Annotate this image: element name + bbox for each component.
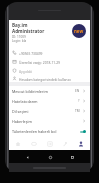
button[interactable]: Home xyxy=(11,137,25,150)
button[interactable]: Dil seçimi xyxy=(9,106,90,116)
staticText: Tüketenlerden haberli bol xyxy=(12,129,80,134)
staticText: Haberleşim xyxy=(12,119,82,124)
staticText: Login: bla xyxy=(12,39,27,43)
button[interactable]: Tüketenlerden haberli bol xyxy=(9,126,90,136)
button[interactable]: Messages xyxy=(27,137,41,150)
button[interactable]: Hatırlatıcılarım xyxy=(9,96,90,106)
staticText: Hatırlatıcılarım xyxy=(12,99,78,104)
button[interactable]: Add xyxy=(43,137,57,150)
staticText: Dil seçimi xyxy=(12,109,75,114)
staticText: new xyxy=(74,28,84,34)
staticText: ? xyxy=(78,99,80,103)
staticText: ID: 11009 xyxy=(12,35,26,39)
staticText: Üzerelisi vaqiy: 2018-11-29 xyxy=(19,60,60,64)
staticText: +90565 730499 xyxy=(19,51,43,55)
staticText: TM xyxy=(75,109,80,113)
staticText: Aygıdaki xyxy=(19,69,33,73)
staticText: Mevcut bildirimlerim xyxy=(12,89,75,94)
staticText: EN xyxy=(75,89,80,93)
button[interactable]: Home xyxy=(45,152,55,162)
staticText: Administrator xyxy=(12,28,45,34)
staticText: Hesabım kategorisindeki kullanıcı xyxy=(19,77,71,81)
button[interactable]: Profile xyxy=(74,137,88,150)
button[interactable]: Haberleşim xyxy=(9,116,90,126)
button[interactable]: Mevcut bildirimlerim xyxy=(9,86,90,96)
button[interactable]: Recents xyxy=(67,152,77,162)
button[interactable]: Back xyxy=(22,152,32,162)
button[interactable]: Tools xyxy=(58,137,72,150)
staticText: Bay.im xyxy=(12,22,28,28)
